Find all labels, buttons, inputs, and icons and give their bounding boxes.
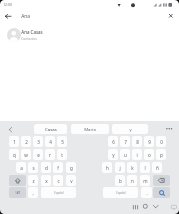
button[interactable]: Español (41, 187, 76, 198)
button[interactable]: q (9, 149, 19, 160)
staticText: p (160, 152, 163, 158)
button[interactable]: Español (103, 187, 138, 198)
button[interactable]: 8 (132, 136, 142, 147)
button[interactable]: e (33, 149, 43, 160)
button[interactable]: 6 (108, 136, 118, 147)
staticText: a (20, 165, 23, 171)
button[interactable]: u (120, 149, 130, 160)
staticText: q (13, 152, 16, 158)
staticText: Maria (84, 126, 96, 132)
staticText: x (45, 178, 48, 184)
staticText: s (32, 165, 35, 171)
staticText: . (146, 190, 148, 196)
button[interactable] (9, 175, 26, 186)
button[interactable]: , (28, 187, 38, 198)
staticText: 5 (61, 139, 64, 145)
button[interactable]: Maria (71, 124, 109, 134)
button[interactable]: 0 (156, 136, 166, 147)
button[interactable]: j (115, 162, 125, 173)
staticText: l (144, 165, 146, 171)
staticText: v (70, 178, 73, 184)
staticText: c (57, 178, 60, 184)
button[interactable]: n (127, 175, 137, 186)
staticText: , (32, 190, 34, 196)
staticText: f (57, 165, 59, 171)
staticText: i (136, 152, 138, 158)
button[interactable]: 9 (144, 136, 154, 147)
staticText: w (24, 152, 28, 158)
button[interactable] (168, 201, 179, 213)
staticText: Español (116, 191, 126, 195)
button[interactable]: x (41, 175, 51, 186)
button[interactable]: f (53, 162, 63, 173)
button[interactable]: 7 (120, 136, 130, 147)
button[interactable]: b (115, 175, 125, 186)
button[interactable] (2, 11, 14, 21)
button[interactable] (162, 123, 176, 135)
button[interactable]: o (144, 149, 154, 160)
staticText: 0 (160, 139, 163, 145)
button[interactable]: y (112, 124, 148, 134)
staticText: h (106, 165, 109, 171)
button[interactable]: k (127, 162, 137, 173)
button[interactable] (153, 187, 170, 198)
button[interactable]: 2 (21, 136, 31, 147)
staticText: Casas (45, 126, 57, 132)
button[interactable]: y (108, 149, 118, 160)
staticText: o (148, 152, 151, 158)
button[interactable]: 3 (33, 136, 43, 147)
button[interactable]: z (28, 175, 38, 186)
button[interactable]: c (53, 175, 63, 186)
button[interactable]: 1 (9, 136, 19, 147)
staticText: 12:00 (3, 2, 12, 7)
staticText: n (131, 178, 134, 184)
button[interactable]: m (140, 175, 150, 186)
staticText: Contactos (21, 36, 37, 40)
staticText: r (49, 152, 51, 158)
staticText: d (45, 165, 48, 171)
staticText: Español (54, 191, 64, 195)
staticText: m (143, 178, 148, 184)
button[interactable]: r (45, 149, 55, 160)
staticText: 8 (136, 139, 139, 145)
button[interactable] (4, 123, 16, 135)
button[interactable]: d (41, 162, 51, 173)
button[interactable]: 4 (45, 136, 55, 147)
button[interactable]: i (132, 149, 142, 160)
button[interactable]: g (66, 162, 76, 173)
staticText: ñ (156, 165, 159, 171)
staticText: 4 (49, 139, 52, 145)
button[interactable]: Casas (34, 124, 67, 134)
button[interactable]: Ana Casas (0, 26, 179, 43)
button[interactable]: 5 (57, 136, 67, 147)
staticText: 2 (25, 139, 28, 145)
staticText: 3 (37, 139, 40, 145)
staticText: !#1 (15, 190, 21, 195)
button[interactable] (130, 201, 140, 212)
button[interactable]: s (28, 162, 38, 173)
button[interactable]: . (141, 187, 152, 198)
button[interactable]: v (66, 175, 76, 186)
button[interactable]: !#1 (9, 187, 26, 198)
button[interactable]: t (57, 149, 67, 160)
button[interactable]: a (16, 162, 26, 173)
button[interactable]: l (140, 162, 150, 173)
staticText: k (131, 165, 134, 171)
staticText: z (32, 178, 35, 184)
staticText: e (37, 152, 40, 158)
staticText: y (112, 152, 115, 158)
staticText: j (119, 165, 121, 171)
staticText: g (70, 165, 73, 171)
button[interactable] (140, 201, 150, 212)
button[interactable] (150, 201, 161, 212)
staticText: 9 (148, 139, 151, 145)
staticText: u (124, 152, 127, 158)
button[interactable] (153, 175, 170, 186)
button[interactable]: ñ (152, 162, 162, 173)
button[interactable] (165, 11, 176, 21)
staticText: 7 (124, 139, 127, 145)
button[interactable]: p (156, 149, 166, 160)
button[interactable]: w (21, 149, 31, 160)
staticText: b (119, 178, 122, 184)
button[interactable]: h (102, 162, 112, 173)
